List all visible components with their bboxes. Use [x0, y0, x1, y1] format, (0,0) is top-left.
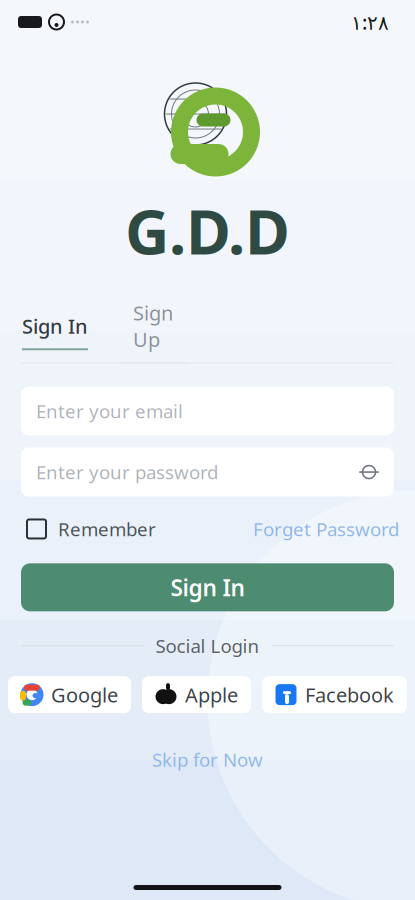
- staticText: Forget Password: [253, 517, 399, 541]
- button[interactable]: Google: [8, 676, 131, 713]
- button[interactable]: Show password: [352, 455, 386, 489]
- staticText: ١:٢٨: [351, 9, 389, 35]
- button[interactable]: Skip for Now: [134, 741, 281, 778]
- button[interactable]: Facebook: [262, 676, 407, 713]
- staticText: Enter your password: [36, 460, 218, 484]
- staticText: Facebook: [305, 681, 394, 708]
- staticText: G.D.D: [125, 190, 290, 271]
- staticText: Enter your email: [36, 399, 183, 423]
- button[interactable]: Sign In: [22, 313, 88, 350]
- staticText: Remember: [58, 517, 156, 541]
- button[interactable]: Sign Up: [120, 299, 186, 363]
- staticText: Skip for Now: [152, 747, 263, 772]
- button[interactable]: Apple: [142, 676, 251, 713]
- staticText: Google: [51, 681, 118, 708]
- button[interactable]: Forget Password: [253, 517, 399, 541]
- staticText: Social Login: [155, 633, 259, 658]
- staticText: Apple: [185, 681, 238, 708]
- staticText: Sign Up: [133, 299, 173, 352]
- staticText: Sign In: [170, 572, 244, 602]
- button[interactable]: Remember: [27, 517, 156, 541]
- button[interactable]: Sign In: [21, 563, 394, 611]
- staticText: Sign In: [22, 313, 88, 339]
